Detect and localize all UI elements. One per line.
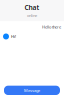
staticText: Message	[24, 88, 40, 93]
staticText: online	[27, 13, 37, 18]
staticText: Hi!	[11, 34, 16, 39]
staticText: Chat	[24, 3, 39, 12]
staticText: Hello there	[42, 24, 61, 29]
